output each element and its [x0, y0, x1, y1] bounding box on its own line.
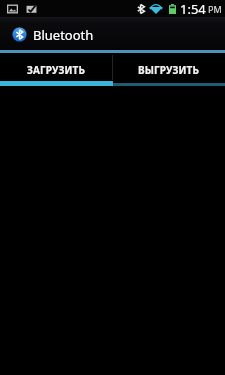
- staticText: ВЫГРУЗИТЬ: [138, 63, 199, 77]
- button[interactable]: ВЫГРУЗИТЬ: [112, 53, 225, 86]
- button[interactable]: Bluetooth: [0, 17, 225, 50]
- button[interactable]: ЗАГРУЗИТЬ: [0, 53, 112, 86]
- staticText: ЗАГРУЗИТЬ: [27, 63, 85, 77]
- staticText: PM: [208, 3, 222, 15]
- staticText: 1:54: [180, 0, 206, 17]
- staticText: Bluetooth: [33, 26, 94, 44]
